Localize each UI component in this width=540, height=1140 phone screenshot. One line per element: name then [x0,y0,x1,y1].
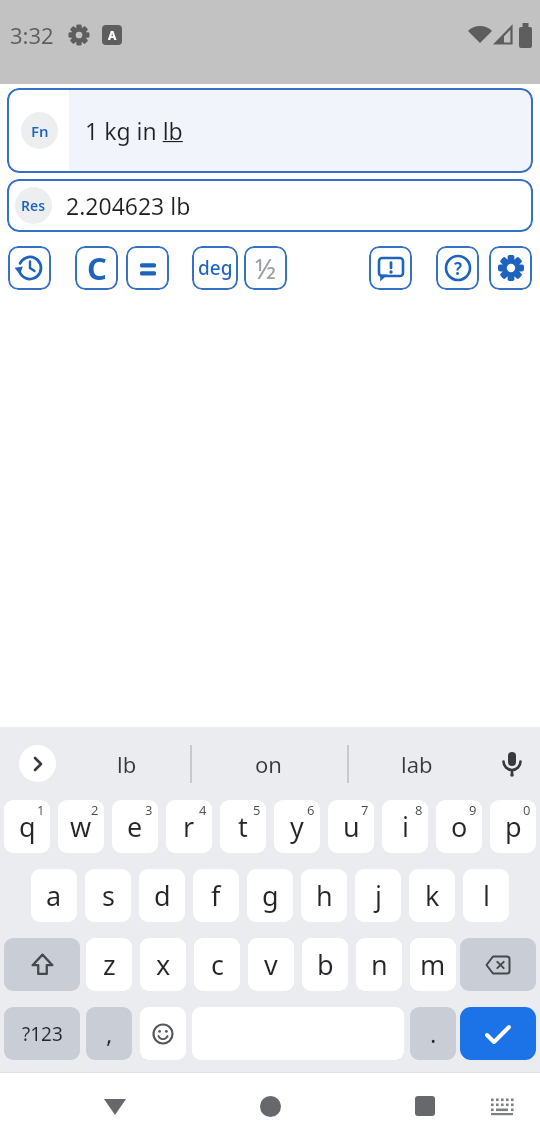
button[interactable]: ? [436,246,479,290]
staticText: 7 [361,801,369,819]
button[interactable] [140,1007,186,1060]
staticText: C [87,247,107,289]
staticText: p [505,808,522,845]
staticText: o [451,808,468,845]
button[interactable]: c [194,938,240,991]
button[interactable]: . [410,1007,456,1060]
button[interactable] [489,246,532,290]
staticText: q [19,808,36,845]
button[interactable]: h [301,869,347,922]
staticText: , [106,1017,113,1050]
staticText: Fn [31,121,49,141]
button[interactable] [486,1090,518,1122]
button[interactable]: m [410,938,456,991]
staticText: 1 [37,801,45,819]
staticText: deg [198,255,233,281]
button[interactable]: lb [64,727,190,800]
staticText: r [183,808,195,845]
button[interactable] [19,745,56,782]
staticText: a [46,877,62,914]
button[interactable]: o [436,800,482,853]
staticText: w [70,808,92,845]
staticText: d [154,877,171,914]
staticText: ½ [255,250,276,287]
staticText: k [425,877,440,914]
button[interactable]: ?123 [4,1007,80,1060]
button[interactable] [8,246,51,290]
staticText: l [483,877,490,914]
button[interactable] [253,1089,287,1123]
button[interactable] [369,246,412,290]
button[interactable]: r [166,800,212,853]
staticText: y [290,808,304,845]
staticText: f [211,877,221,914]
button[interactable] [460,1007,536,1060]
button[interactable]: i [382,800,428,853]
button[interactable]: l [463,869,509,922]
button[interactable]: k [409,869,455,922]
staticText: t [238,808,248,845]
staticText: . [430,1017,437,1050]
staticText: j [375,877,382,914]
button[interactable]: , [86,1007,132,1060]
button[interactable]: f [193,869,239,922]
staticText: 2.204623 lb [66,190,191,221]
button[interactable] [460,938,536,991]
button[interactable]: a [31,869,77,922]
button[interactable]: y [274,800,320,853]
button[interactable]: x [140,938,186,991]
staticText: lab [401,749,433,779]
staticText: g [262,877,279,914]
staticText: 3:32 [10,20,54,50]
button[interactable]: e [112,800,158,853]
staticText: e [127,808,143,845]
staticText: 8 [415,801,423,819]
staticText: 3 [145,801,153,819]
staticText: 6 [307,801,315,819]
button[interactable]: v [248,938,294,991]
button[interactable]: Fn [21,112,58,149]
button[interactable]: t [220,800,266,853]
staticText: n [371,946,388,983]
button[interactable]: s [85,869,131,922]
staticText: 9 [469,801,477,819]
button[interactable] [4,938,80,991]
button[interactable]: z [86,938,132,991]
button[interactable]: C [75,246,118,290]
button[interactable]: d [139,869,185,922]
button[interactable]: g [247,869,293,922]
staticText: b [317,946,334,983]
button[interactable]: j [355,869,401,922]
button[interactable]: on [190,727,347,800]
staticText: c [211,946,224,983]
button[interactable]: n [356,938,402,991]
staticText: 4 [199,801,207,819]
button[interactable] [126,246,169,290]
button[interactable]: p [490,800,536,853]
button[interactable]: b [302,938,348,991]
staticText: x [156,946,171,983]
button[interactable]: u [328,800,374,853]
button[interactable]: lab [347,727,487,800]
staticText: lb [117,749,137,779]
staticText: s [102,877,115,914]
staticText: h [316,877,333,914]
staticText: z [103,946,116,983]
staticText: ?123 [22,1021,63,1047]
staticText: i [402,808,409,845]
button[interactable]: Fn [7,88,533,173]
button[interactable] [98,1089,132,1123]
staticText: 0 [523,801,531,819]
button[interactable]: Res [15,187,52,224]
staticText: A [108,27,117,43]
button[interactable]: q [4,800,50,853]
button[interactable]: deg [192,246,238,290]
button[interactable]: w [58,800,104,853]
staticText: 5 [253,801,261,819]
button[interactable] [494,746,530,782]
staticText: v [264,946,278,983]
button[interactable]: Res [7,179,533,232]
button[interactable] [408,1089,442,1123]
button[interactable]: ½ [244,246,287,290]
